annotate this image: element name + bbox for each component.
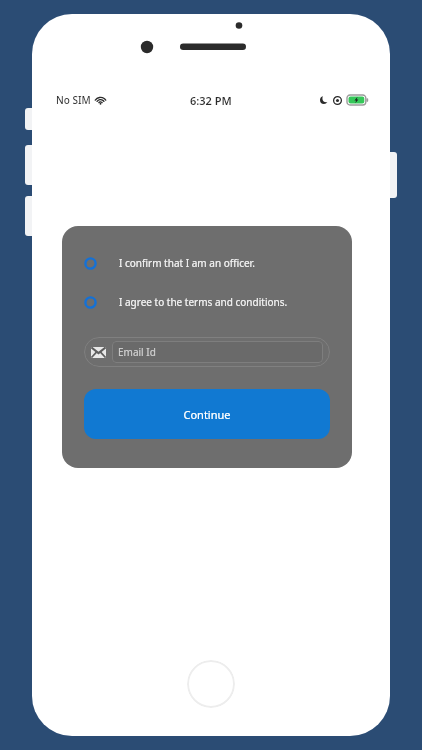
staticText: I agree to the terms and conditions. <box>119 295 288 309</box>
other: Email <box>91 347 106 358</box>
staticText: I confirm that I am an officer. <box>119 256 255 270</box>
button[interactable]: I confirm that I am an officer. <box>84 256 330 270</box>
staticText: No SIM <box>56 93 91 107</box>
staticText: 6:32 PM <box>190 93 232 108</box>
button[interactable]: Email <box>84 337 330 367</box>
button[interactable]: I agree to the terms and conditions. <box>84 295 330 309</box>
staticText: Continue <box>183 407 231 422</box>
button[interactable]: Home <box>187 660 235 708</box>
staticText: Email Id <box>118 345 156 359</box>
button[interactable]: Continue <box>84 389 330 439</box>
